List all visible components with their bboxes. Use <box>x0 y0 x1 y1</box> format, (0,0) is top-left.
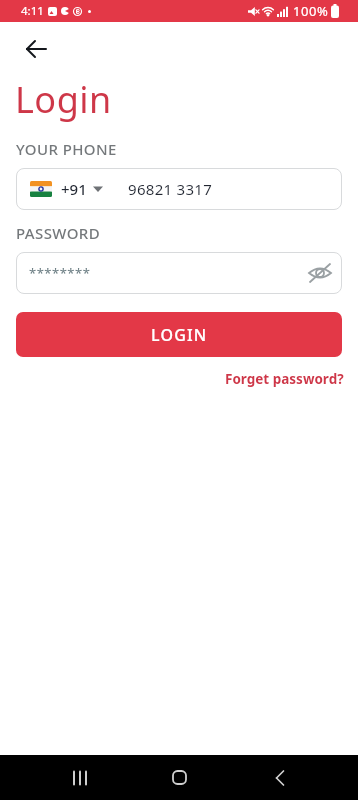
staticText: +91 <box>61 179 87 199</box>
staticText: YOUR PHONE <box>16 139 117 159</box>
button[interactable] <box>25 37 49 61</box>
button[interactable] <box>35 755 125 800</box>
staticText: ******** <box>29 264 91 282</box>
button[interactable] <box>235 755 325 800</box>
staticText: PASSWORD <box>16 223 101 243</box>
staticText: 96821 3317 <box>128 179 213 199</box>
staticText: 4:11 <box>21 3 44 19</box>
button[interactable]: ******** <box>16 252 342 294</box>
button[interactable]: +91 <box>16 168 342 210</box>
staticText: Login <box>15 75 112 124</box>
button[interactable]: Forget password? <box>225 370 344 388</box>
staticText: LOGIN <box>151 324 208 346</box>
staticText: 100% <box>293 2 329 20</box>
button[interactable] <box>134 755 224 800</box>
button[interactable]: LOGIN <box>16 312 342 357</box>
button[interactable] <box>298 252 342 294</box>
